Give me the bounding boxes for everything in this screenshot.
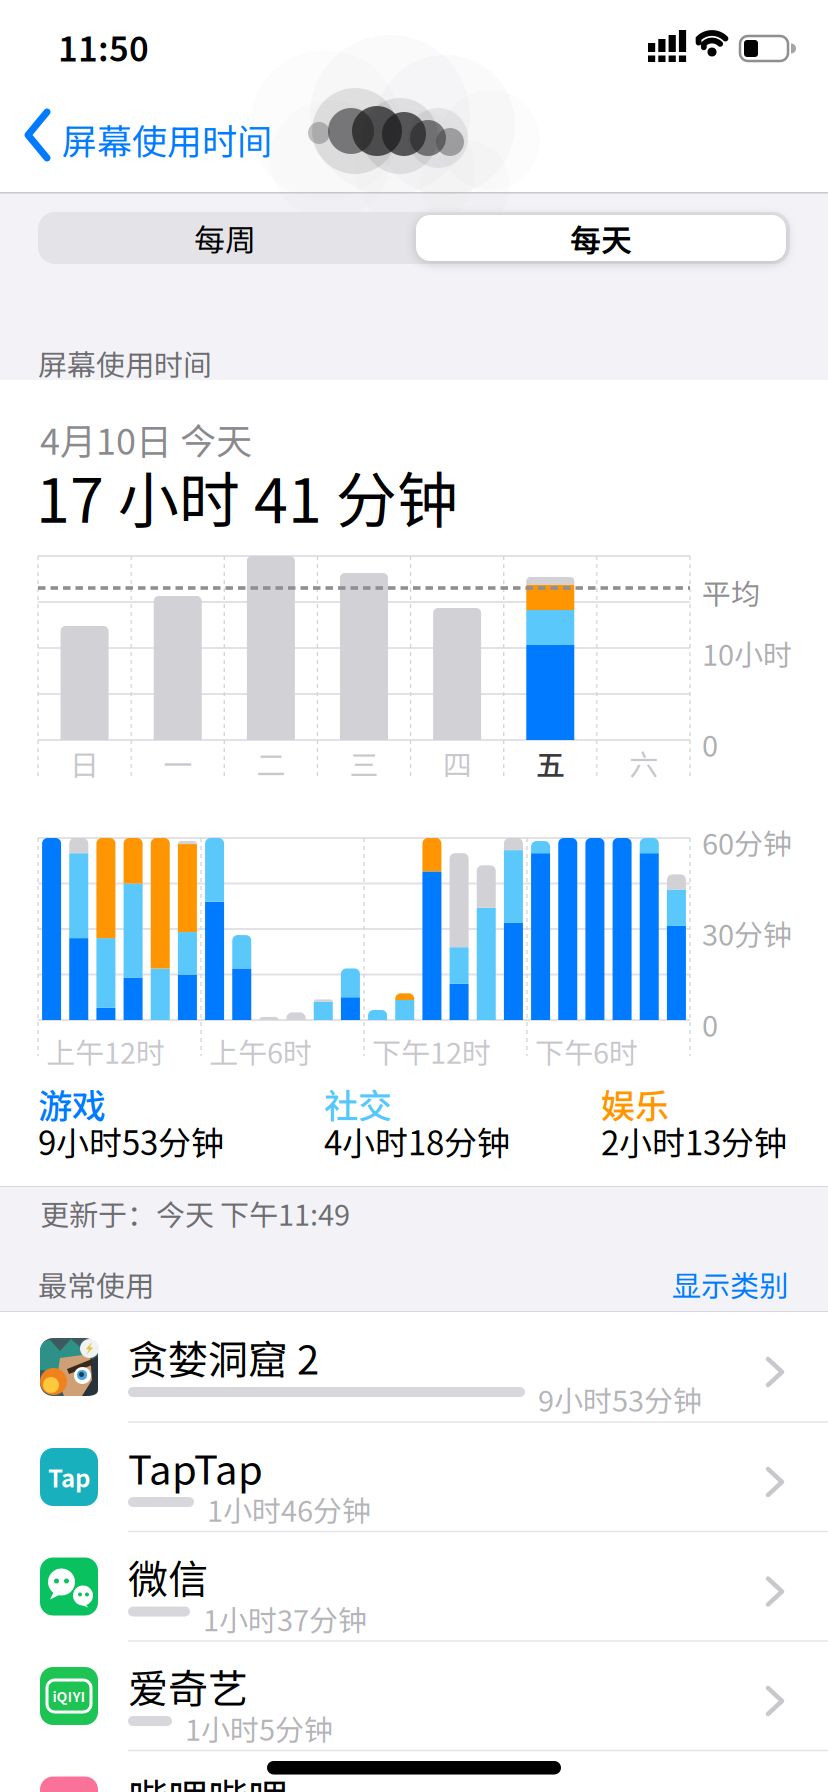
- staticText: 五: [536, 742, 565, 784]
- staticText: 哔哩哔哩: [128, 1766, 288, 1792]
- staticText: 11:50: [58, 22, 149, 71]
- staticText: 微信: [128, 1547, 208, 1605]
- staticText: 日: [70, 742, 99, 784]
- staticText: 娱乐: [601, 1079, 669, 1128]
- staticText: 4小时18分钟: [324, 1117, 510, 1165]
- staticText: 下午6时: [535, 1030, 638, 1072]
- staticText: 平均: [702, 571, 760, 613]
- button[interactable]: 哔哩哔哩: [0, 1750, 828, 1792]
- staticText: 二: [256, 742, 285, 784]
- staticText: 2小时13分钟: [601, 1117, 787, 1165]
- staticText: 1小时37分钟: [203, 1597, 367, 1639]
- staticText: 30分钟: [702, 912, 792, 954]
- staticText: TapTap: [128, 1438, 263, 1496]
- staticText: 每天: [570, 216, 632, 260]
- staticText: 10小时: [702, 632, 792, 674]
- button[interactable]: 贪婪洞窟 2: [0, 1312, 828, 1422]
- staticText: 17 小时 41 分钟: [36, 452, 458, 540]
- button[interactable]: Tap: [0, 1422, 828, 1532]
- button[interactable]: iQIYI: [0, 1641, 828, 1751]
- staticText: 显示类别: [672, 1263, 788, 1305]
- staticText: iQIYI: [52, 1686, 85, 1706]
- staticText: 9小时53分钟: [538, 1378, 702, 1420]
- staticText: 爱奇艺: [128, 1657, 248, 1715]
- staticText: 六: [629, 742, 658, 784]
- button[interactable]: 微信: [0, 1531, 828, 1641]
- staticText: 4月10日 今天: [40, 413, 252, 465]
- staticText: 60分钟: [702, 821, 792, 863]
- button[interactable]: 显示类别: [672, 1263, 788, 1305]
- staticText: 0: [702, 1003, 718, 1045]
- button[interactable]: 每天: [416, 215, 786, 261]
- staticText: 0: [702, 723, 718, 765]
- staticText: 一: [163, 742, 192, 784]
- staticText: 游戏: [38, 1079, 106, 1128]
- staticText: 1小时5分钟: [185, 1707, 333, 1749]
- staticText: Tap: [48, 1460, 90, 1494]
- staticText: 贪婪洞窟 2: [128, 1328, 319, 1386]
- staticText: 屏幕使用时间: [62, 114, 272, 165]
- staticText: 每周: [194, 216, 256, 260]
- staticText: 最常使用: [38, 1263, 154, 1305]
- button[interactable]: 每周: [40, 212, 410, 264]
- staticText: 屏幕使用时间: [38, 342, 212, 384]
- staticText: 下午12时: [372, 1030, 491, 1072]
- staticText: 更新于：今天 下午11:49: [40, 1192, 350, 1234]
- staticText: 1小时46分钟: [207, 1488, 371, 1530]
- staticText: 三: [349, 742, 378, 784]
- staticText: 上午12时: [46, 1030, 165, 1072]
- staticText: 四: [443, 742, 472, 784]
- staticText: 上午6时: [209, 1030, 312, 1072]
- staticText: 9小时53分钟: [38, 1117, 224, 1165]
- button[interactable]: 屏幕使用时间: [0, 100, 440, 172]
- staticText: 社交: [324, 1079, 392, 1128]
